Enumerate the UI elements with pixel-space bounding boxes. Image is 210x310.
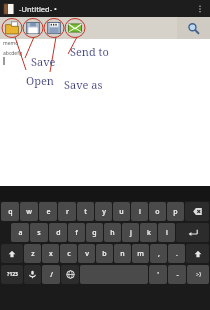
staticText: / — [50, 270, 53, 280]
button[interactable]: y — [95, 202, 112, 221]
button[interactable]: x — [42, 244, 59, 263]
staticText: i — [139, 207, 141, 217]
staticText: g — [92, 228, 97, 238]
staticText: m — [137, 249, 144, 259]
staticText: u — [119, 207, 124, 217]
button[interactable]: Shift — [1, 244, 23, 263]
button[interactable]: Save — [31, 54, 56, 69]
button[interactable]: Open — [3, 18, 21, 38]
staticText: e — [46, 207, 51, 217]
button[interactable]: Search — [177, 17, 210, 39]
staticText: o — [155, 207, 160, 217]
button[interactable]: Backspace — [185, 202, 209, 221]
staticText: -Untitled- • — [19, 4, 57, 14]
staticText: n — [120, 249, 125, 259]
staticText: q — [8, 207, 13, 217]
button[interactable]: Save as — [64, 77, 103, 92]
button[interactable]: - — [168, 265, 186, 284]
button[interactable]: d — [49, 223, 67, 242]
button[interactable]: h — [104, 223, 121, 242]
staticText: c — [67, 249, 71, 259]
button[interactable]: r — [58, 202, 76, 221]
staticText: , — [158, 249, 160, 259]
button[interactable]: Send to — [70, 44, 109, 59]
button[interactable]: g — [86, 223, 103, 242]
button[interactable]: Open — [26, 73, 54, 88]
staticText: r — [66, 207, 69, 217]
staticText: memo — [3, 40, 19, 47]
button[interactable]: k — [140, 223, 157, 242]
button[interactable]: a — [11, 223, 29, 242]
button[interactable]: / — [42, 265, 60, 284]
button[interactable]: ' — [149, 265, 167, 284]
button[interactable]: e — [39, 202, 57, 221]
staticText: z — [31, 249, 35, 259]
button[interactable]: , — [150, 244, 167, 263]
button[interactable]: u — [113, 202, 130, 221]
staticText: f — [75, 228, 78, 238]
staticText: j — [130, 228, 132, 238]
button[interactable]: Save — [24, 18, 42, 38]
staticText: - — [176, 270, 179, 280]
button[interactable]: ?123 — [1, 265, 23, 284]
button[interactable]: j — [122, 223, 139, 242]
staticText: s — [37, 228, 41, 238]
button[interactable]: Shift — [186, 244, 209, 263]
button[interactable]: m — [132, 244, 149, 263]
button[interactable]: q — [1, 202, 19, 221]
staticText: y — [102, 207, 106, 217]
button[interactable]: More options — [192, 1, 208, 17]
staticText: k — [147, 228, 151, 238]
staticText: t — [84, 207, 87, 217]
button[interactable]: Enter — [176, 223, 209, 242]
staticText: b — [102, 249, 107, 259]
staticText: a — [18, 228, 23, 238]
staticText: p — [173, 207, 178, 217]
button[interactable]: n — [114, 244, 131, 263]
staticText: w — [26, 207, 32, 217]
staticText: l — [166, 228, 168, 238]
button[interactable]: f — [68, 223, 85, 242]
staticText: . — [176, 249, 178, 259]
staticText: h — [110, 228, 115, 238]
button[interactable]: Change language — [61, 265, 79, 284]
button[interactable]: i — [131, 202, 148, 221]
staticText: d — [56, 228, 61, 238]
staticText: ' — [157, 270, 159, 280]
staticText: x — [49, 249, 53, 259]
staticText: ?123 — [7, 271, 18, 278]
staticText: :-) — [196, 271, 201, 278]
button[interactable]: o — [149, 202, 166, 221]
button[interactable]: . — [168, 244, 185, 263]
button[interactable]: s — [30, 223, 48, 242]
button[interactable]: c — [60, 244, 77, 263]
button[interactable]: Save as — [45, 18, 63, 38]
button[interactable]: v — [78, 244, 95, 263]
button[interactable]: t — [77, 202, 94, 221]
staticText: abcdefg — [3, 50, 22, 57]
button[interactable]: z — [24, 244, 41, 263]
button[interactable]: p — [167, 202, 184, 221]
staticText: v — [85, 249, 89, 259]
button[interactable]: Send to — [66, 18, 84, 38]
button[interactable]: Voice input — [24, 265, 41, 284]
button[interactable]: :-) — [187, 265, 209, 284]
button[interactable]: w — [20, 202, 38, 221]
button[interactable]: l — [158, 223, 175, 242]
button[interactable]: b — [96, 244, 113, 263]
